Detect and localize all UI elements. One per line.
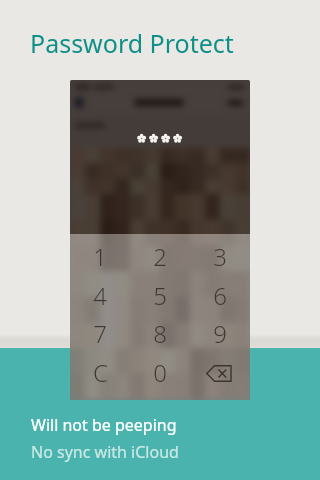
- staticText: C: [93, 356, 108, 389]
- button[interactable]: 6: [190, 276, 250, 315]
- staticText: 6: [213, 279, 227, 312]
- staticText: No sync with iCloud: [31, 441, 179, 463]
- button[interactable]: 4: [70, 276, 130, 315]
- staticText: 5: [153, 279, 167, 312]
- staticText: 2: [153, 240, 167, 273]
- button[interactable]: C: [70, 353, 130, 392]
- button[interactable]: 0: [130, 353, 190, 392]
- staticText: 8: [153, 317, 167, 350]
- button[interactable]: 8: [130, 314, 190, 353]
- staticText: 7: [93, 317, 107, 350]
- button[interactable]: 9: [190, 314, 250, 353]
- staticText: Password Protect: [30, 26, 234, 60]
- staticText: 0: [153, 356, 167, 389]
- button[interactable]: 3: [190, 237, 250, 276]
- button[interactable]: Backspace: [190, 353, 250, 392]
- staticText: Will not be peeping: [31, 414, 177, 436]
- button[interactable]: 5: [130, 276, 190, 315]
- staticText: 9: [213, 317, 227, 350]
- button[interactable]: 7: [70, 314, 130, 353]
- button[interactable]: 2: [130, 237, 190, 276]
- staticText: 1: [93, 240, 107, 273]
- staticText: 3: [213, 240, 227, 273]
- button[interactable]: 1: [70, 237, 130, 276]
- other: Backspace: [206, 365, 232, 382]
- staticText: 4: [93, 279, 107, 312]
